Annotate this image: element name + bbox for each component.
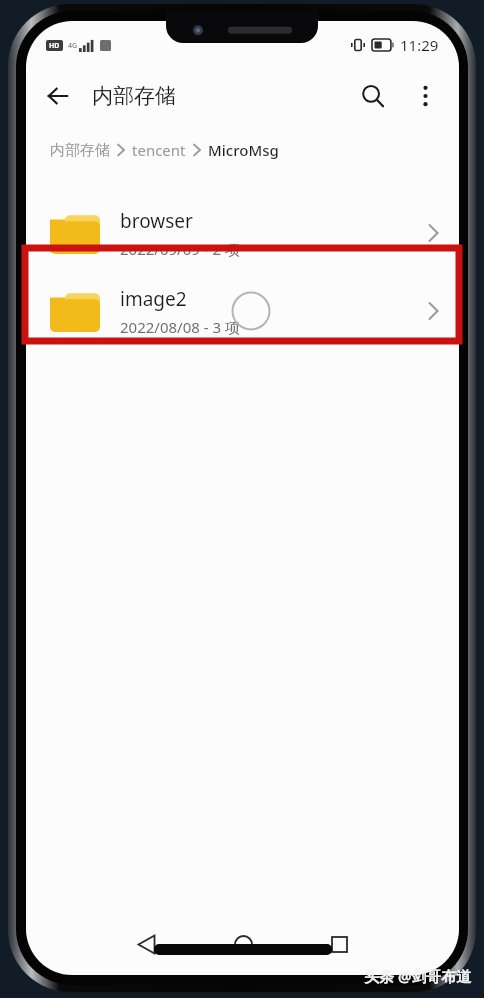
staticText: browser	[120, 208, 193, 234]
button[interactable]: Recent apps	[321, 926, 357, 962]
staticText: 内部存储	[92, 83, 176, 109]
button[interactable]: Back	[128, 926, 164, 962]
button[interactable]: More options	[403, 74, 447, 118]
button[interactable]: 内部存储	[50, 141, 110, 160]
button[interactable]: tencent	[132, 140, 186, 160]
button[interactable]: browser	[26, 194, 459, 272]
staticText: 11:29	[400, 35, 439, 55]
staticText: 头条 @剑哥布道	[364, 966, 472, 986]
staticText: 2022/09/09 - 2 项	[120, 239, 240, 259]
button[interactable]: Search	[349, 72, 397, 120]
button[interactable]: Home	[225, 926, 261, 962]
button[interactable]: image2	[26, 272, 459, 350]
staticText: 2022/08/08 - 3 项	[120, 317, 240, 337]
staticText: image2	[120, 286, 187, 312]
staticText: HD	[49, 41, 60, 51]
staticText: 4G	[68, 41, 78, 51]
button[interactable]: MicroMsg	[208, 140, 279, 160]
button[interactable]: Back	[34, 72, 82, 120]
